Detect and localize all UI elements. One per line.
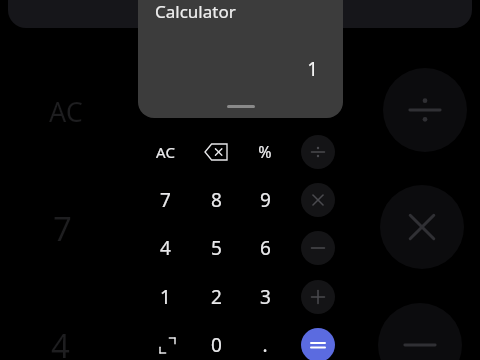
button[interactable]: 8 <box>192 178 240 222</box>
button[interactable]: AC <box>141 130 189 174</box>
staticText: . <box>262 332 268 358</box>
staticText: 6 <box>260 235 271 261</box>
button[interactable]: Multiply <box>301 183 335 217</box>
button[interactable]: 7 <box>141 178 189 222</box>
staticText: 2 <box>211 284 222 310</box>
button[interactable]: 0 <box>192 323 240 360</box>
button[interactable]: 1 <box>141 275 189 319</box>
staticText: 1 <box>160 284 171 310</box>
staticText: 7 <box>53 206 72 251</box>
staticText: 8 <box>211 187 222 213</box>
staticText: 5 <box>211 235 222 261</box>
staticText: Calculator <box>155 0 236 23</box>
staticText: 0 <box>211 332 222 358</box>
button[interactable]: Equals <box>301 328 335 360</box>
staticText: 4 <box>160 235 171 261</box>
button[interactable]: Divide <box>301 135 335 169</box>
staticText: % <box>258 141 272 163</box>
staticText: 1 <box>307 56 318 82</box>
button[interactable]: 6 <box>241 226 289 270</box>
button[interactable]: 5 <box>192 226 240 270</box>
button[interactable]: Subtract <box>301 231 335 265</box>
button[interactable]: Backspace <box>192 130 240 174</box>
staticText: AC <box>49 93 83 130</box>
staticText: 3 <box>260 284 271 310</box>
staticText: 4 <box>51 323 70 360</box>
button[interactable]: Calculator <box>138 0 343 118</box>
button[interactable]: Add <box>301 280 335 314</box>
staticText: 7 <box>160 187 171 213</box>
button[interactable]: 3 <box>241 275 289 319</box>
staticText: AC <box>156 142 175 162</box>
button[interactable]: 4 <box>141 226 189 270</box>
button[interactable]: % <box>241 130 289 174</box>
button[interactable]: 2 <box>192 275 240 319</box>
staticText: 9 <box>260 187 271 213</box>
button[interactable]: 9 <box>241 178 289 222</box>
button[interactable]: Expand <box>143 323 191 360</box>
button[interactable]: . <box>241 323 289 360</box>
